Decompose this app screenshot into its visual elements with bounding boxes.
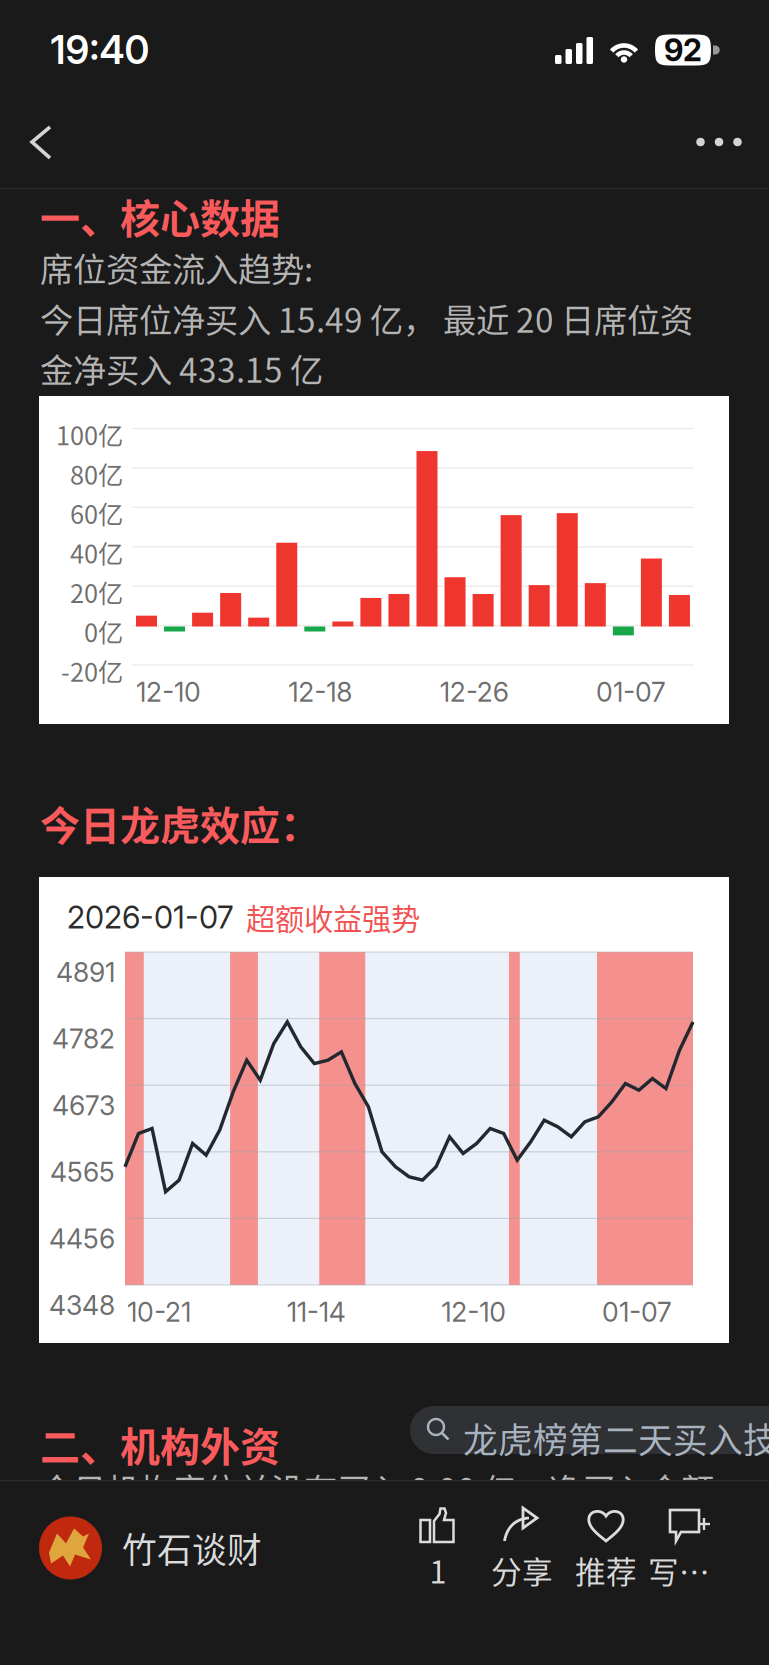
button[interactable]: Back	[0, 100, 84, 184]
button[interactable]: 竹石谈财	[39, 1498, 339, 1598]
staticText: 4673	[52, 1089, 115, 1122]
staticText: 19:40	[50, 27, 149, 73]
staticText: 二、机构外资	[40, 1415, 280, 1473]
staticText: 4456	[49, 1223, 115, 1255]
staticText: 分享	[491, 1548, 553, 1592]
staticText: 4348	[49, 1289, 115, 1321]
staticText: 一、核心数据	[40, 187, 280, 245]
button[interactable]: More options	[669, 100, 769, 184]
staticText: 今日龙虎效应：	[40, 794, 320, 852]
staticText: 今日机构席位并没有买入 0.00 亿，净买入金额	[40, 1464, 714, 1512]
staticText: 12-18	[288, 676, 352, 708]
staticText: -20亿	[61, 652, 123, 689]
staticText: 今日席位净买入 15.49 亿， 最近 20 日席位资	[40, 294, 693, 342]
staticText: 0亿	[84, 613, 123, 650]
button[interactable]: Like	[396, 1506, 480, 1606]
button[interactable]: Recommend	[564, 1506, 648, 1606]
staticText: 1	[429, 1548, 446, 1592]
staticText: 2026-01-07	[67, 899, 234, 936]
staticText: 4565	[50, 1156, 115, 1188]
staticText: 11-14	[287, 1296, 346, 1328]
staticText: 100亿	[56, 416, 123, 453]
staticText: 推荐	[575, 1548, 637, 1592]
staticText: 12-26	[440, 676, 509, 708]
staticText: 12-10	[136, 676, 201, 708]
staticText: 席位资金流入趋势:	[40, 243, 313, 291]
staticText: 龙虎榜第二天买入技巧	[463, 1413, 769, 1463]
staticText: 写留言	[648, 1548, 732, 1592]
button[interactable]: Write comment	[648, 1506, 732, 1606]
staticText: 超额收益强势	[246, 896, 420, 938]
staticText: 01-07	[602, 1296, 672, 1328]
staticText: 竹石谈财	[122, 1523, 262, 1573]
staticText: 60亿	[70, 495, 123, 531]
button[interactable]: Share	[480, 1506, 564, 1606]
staticText: 80亿	[70, 455, 123, 492]
staticText: 12-10	[441, 1296, 506, 1328]
staticText: 01-07	[596, 676, 666, 708]
staticText: 10-21	[127, 1296, 191, 1328]
staticText: 4782	[52, 1023, 115, 1055]
staticText: 40亿	[70, 534, 123, 571]
button[interactable]: 搜索 龙虎榜第二天买入技巧	[410, 1406, 769, 1454]
staticText: 金净买入 433.15 亿	[40, 344, 323, 392]
staticText: 92	[664, 31, 702, 68]
staticText: 20亿	[70, 573, 123, 610]
staticText: 4891	[56, 956, 115, 988]
